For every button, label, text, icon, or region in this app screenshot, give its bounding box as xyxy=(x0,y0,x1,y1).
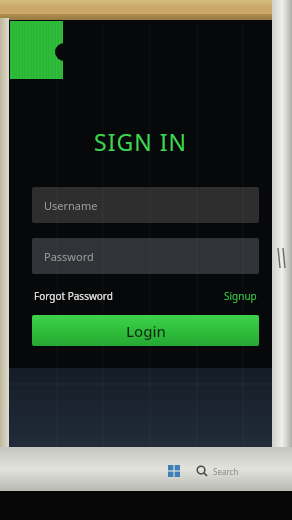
staticText: Username xyxy=(44,198,98,213)
staticText: Forgot Password xyxy=(34,289,113,303)
button[interactable]: Forgot Password xyxy=(32,286,115,306)
staticText: SIGN IN xyxy=(94,126,187,157)
button[interactable]: Search xyxy=(194,463,241,479)
button[interactable]: Password xyxy=(32,238,259,274)
button[interactable]: Username xyxy=(32,187,259,223)
staticText: Search xyxy=(213,466,239,477)
staticText: Password xyxy=(44,249,94,264)
staticText: Login xyxy=(126,321,166,341)
button[interactable]: Login xyxy=(32,315,259,346)
button[interactable]: Signup xyxy=(222,286,259,306)
button[interactable]: Start xyxy=(164,461,184,481)
staticText: Signup xyxy=(224,289,257,303)
